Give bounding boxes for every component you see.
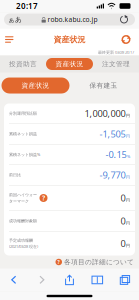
- staticText: 0: [121, 192, 126, 204]
- staticText: 円: [126, 113, 130, 118]
- staticText: -0.15: [106, 148, 127, 161]
- staticText: 0: [121, 215, 126, 227]
- staticText: 投資助言: [9, 60, 37, 68]
- staticText: 資産状況: [55, 60, 83, 68]
- staticText: -1,505: [100, 128, 126, 140]
- staticText: 1,000,000: [85, 107, 126, 120]
- button[interactable]: Bookmarks: [83, 269, 111, 291]
- button[interactable]: 前回ハイウォーターマークの説明: [9, 192, 47, 203]
- staticText: 資産状況: [21, 81, 49, 90]
- staticText: (2021/03/28 現在): [9, 244, 38, 249]
- staticText: 円: [126, 198, 130, 203]
- staticText: 成功報酬対象額: [9, 218, 37, 223]
- staticText: 最終更新 03/28 20:17: [98, 49, 134, 55]
- staticText: robo.kabu.co.jp: [48, 15, 98, 24]
- staticText: 円: [126, 175, 130, 180]
- button[interactable]: Back: [0, 269, 28, 291]
- button[interactable]: 資産状況: [1, 77, 69, 93]
- staticText: ターマーク: [9, 199, 29, 203]
- button[interactable]: Share: [56, 269, 83, 291]
- staticText: 累積ネット損益%: [9, 152, 40, 157]
- staticText: ?: [42, 194, 45, 202]
- staticText: 保有建玉: [89, 81, 117, 90]
- staticText: 分別運用預託額: [9, 111, 37, 116]
- staticText: ぁあ: [8, 15, 22, 24]
- staticText: 20:17: [16, 1, 38, 11]
- staticText: 各項目の詳細について: [64, 258, 134, 266]
- staticText: 円: [126, 243, 130, 248]
- button[interactable]: Tabs: [111, 269, 139, 291]
- staticText: ?: [57, 258, 60, 266]
- button[interactable]: Reload: [115, 13, 133, 25]
- staticText: 円: [126, 221, 130, 226]
- button[interactable]: 注文管理: [93, 58, 139, 70]
- button[interactable]: Forward: [28, 269, 56, 291]
- staticText: 前日比: [9, 172, 21, 177]
- button[interactable]: 保有建玉: [69, 77, 137, 93]
- staticText: 0: [121, 237, 126, 250]
- button[interactable]: Page settings: [6, 13, 24, 25]
- staticText: %: [127, 154, 130, 159]
- button[interactable]: Menu: [5, 29, 21, 49]
- staticText: 予定成功報酬: [9, 238, 33, 243]
- button[interactable]: 資産状況: [46, 58, 93, 70]
- staticText: 累積ネット損益: [9, 131, 37, 136]
- staticText: 注文管理: [102, 60, 130, 68]
- staticText: -9,770: [100, 169, 126, 181]
- button[interactable]: 投資助言: [0, 58, 46, 70]
- staticText: 円: [126, 134, 130, 139]
- button[interactable]: Refresh: [118, 29, 134, 49]
- button[interactable]: ?: [0, 255, 139, 268]
- staticText: 資産状況: [53, 35, 85, 44]
- staticText: 前回ハイウォー: [9, 192, 37, 197]
